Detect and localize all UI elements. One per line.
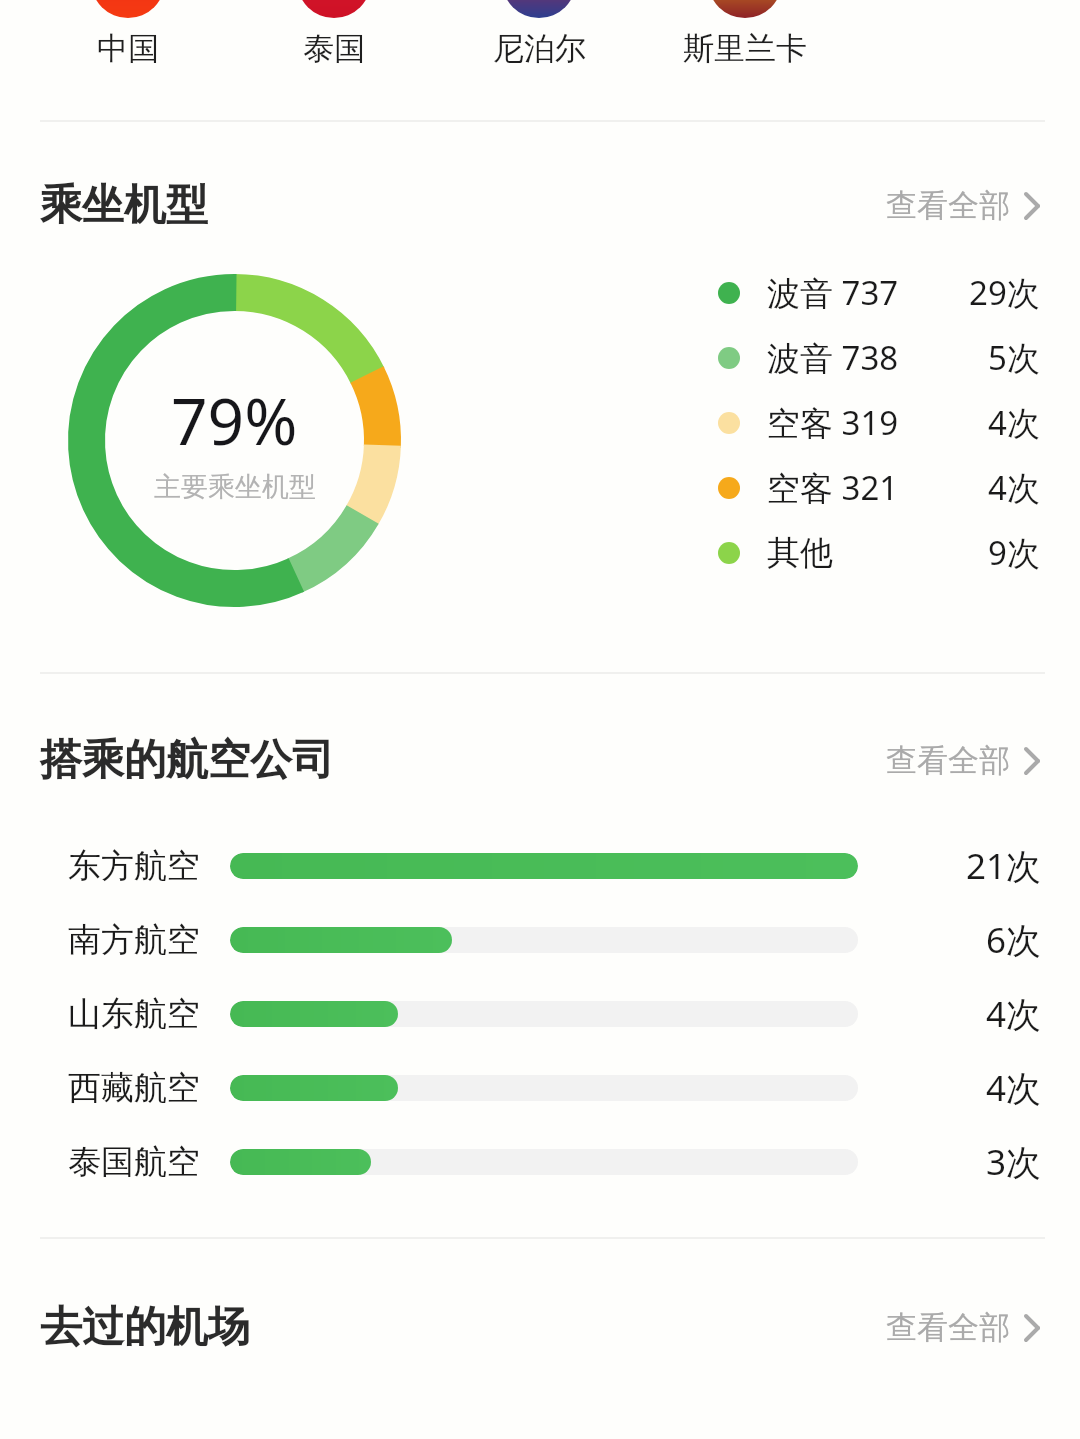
button[interactable]: 尼泊尔	[439, 18, 639, 78]
staticText: 查看全部	[886, 1308, 1010, 1347]
staticText: 中国	[97, 29, 159, 68]
staticText: 泰国航空	[68, 1141, 200, 1183]
button[interactable]: 南方航空	[0, 903, 1080, 977]
button[interactable]: 中国	[28, 18, 228, 78]
staticText: 斯里兰卡	[683, 29, 807, 68]
button[interactable]: 查看全部	[882, 735, 1044, 786]
staticText: 空客 321	[767, 465, 899, 510]
staticText: 查看全部	[886, 186, 1010, 225]
button[interactable]: 空客 319	[718, 390, 1040, 455]
staticText: 搭乘的航空公司	[40, 734, 334, 787]
button[interactable]: 波音 737	[718, 260, 1040, 325]
staticText: 4次	[988, 400, 1040, 445]
staticText: 4次	[988, 465, 1040, 510]
staticText: 波音 738	[767, 335, 899, 380]
staticText: 9次	[988, 530, 1040, 575]
staticText: 29次	[969, 270, 1040, 315]
staticText: 泰国	[303, 29, 365, 68]
button[interactable]: 查看全部	[882, 180, 1044, 231]
staticText: 4次	[986, 990, 1042, 1038]
button[interactable]: 泰国航空	[0, 1125, 1080, 1199]
staticText: 去过的机场	[40, 1301, 250, 1354]
staticText: 79%	[171, 377, 298, 464]
staticText: 6次	[986, 916, 1042, 964]
staticText: 5次	[988, 335, 1040, 380]
button[interactable]: 波音 738	[718, 325, 1040, 390]
staticText: 尼泊尔	[493, 29, 586, 68]
button[interactable]: 西藏航空	[0, 1051, 1080, 1125]
staticText: 波音 737	[767, 270, 899, 315]
staticText: 乘坐机型	[40, 179, 208, 232]
staticText: 主要乘坐机型	[154, 470, 316, 504]
staticText: 其他	[767, 532, 833, 574]
button[interactable]: 空客 321	[718, 455, 1040, 520]
staticText: 山东航空	[68, 993, 200, 1035]
staticText: 南方航空	[68, 919, 200, 961]
button[interactable]: 山东航空	[0, 977, 1080, 1051]
button[interactable]: 斯里兰卡	[645, 18, 845, 78]
staticText: 4次	[986, 1064, 1042, 1112]
staticText: 东方航空	[68, 845, 200, 887]
button[interactable]: 东方航空	[0, 829, 1080, 903]
staticText: 西藏航空	[68, 1067, 200, 1109]
staticText: 查看全部	[886, 741, 1010, 780]
button[interactable]: 其他	[718, 520, 1040, 585]
staticText: 3次	[986, 1138, 1042, 1186]
staticText: 空客 319	[767, 400, 899, 445]
button[interactable]: 泰国	[234, 18, 434, 78]
staticText: 21次	[966, 842, 1042, 890]
button[interactable]: 查看全部	[882, 1302, 1044, 1353]
